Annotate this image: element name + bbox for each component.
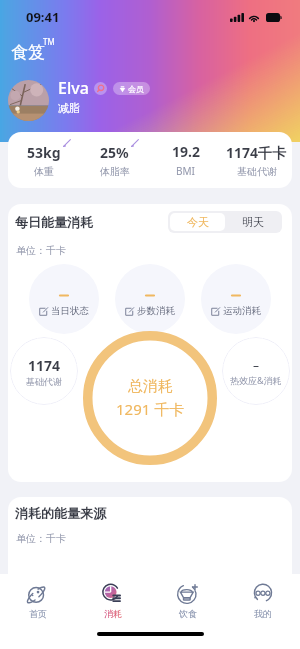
- staticText: 消耗: [104, 608, 122, 619]
- other: 首页: [26, 582, 49, 605]
- button[interactable]: 53kg: [8, 143, 79, 178]
- staticText: 1174: [28, 356, 61, 375]
- button[interactable]: 当日状态: [29, 264, 99, 334]
- staticText: Elva: [58, 77, 89, 99]
- button[interactable]: 消耗: [75, 582, 150, 619]
- staticText: 体脂率: [100, 165, 130, 178]
- staticText: 运动消耗: [223, 305, 261, 317]
- staticText: 1174千卡: [226, 143, 287, 162]
- button[interactable]: 明天: [225, 213, 280, 231]
- staticText: –: [253, 357, 260, 373]
- other: 饮食: [176, 582, 199, 605]
- staticText: 明天: [242, 215, 264, 229]
- staticText: TM: [43, 36, 55, 47]
- staticText: 食笈: [11, 42, 45, 63]
- staticText: 热效应&消耗: [230, 374, 282, 386]
- staticText: 基础代谢: [26, 376, 62, 387]
- button[interactable]: 我的: [225, 582, 300, 619]
- button[interactable]: 19.2: [150, 142, 221, 178]
- button[interactable]: –: [222, 337, 290, 405]
- button[interactable]: 1174千卡: [221, 143, 292, 178]
- staticText: 饮食: [179, 608, 197, 619]
- button[interactable]: 今天: [170, 213, 225, 231]
- button[interactable]: 步数消耗: [115, 264, 185, 334]
- staticText: 体重: [34, 165, 54, 178]
- button[interactable]: 首页: [0, 582, 75, 619]
- staticText: 09:41: [26, 8, 60, 26]
- button[interactable]: 运动消耗: [201, 264, 271, 334]
- staticText: 53kg: [27, 143, 61, 162]
- staticText: 首页: [29, 608, 47, 619]
- staticText: 当日状态: [51, 305, 89, 317]
- button[interactable]: Search: [94, 82, 107, 95]
- staticText: 步数消耗: [137, 305, 175, 317]
- other: 消耗: [101, 582, 124, 605]
- staticText: 减脂: [58, 101, 80, 115]
- staticText: 今天: [187, 215, 209, 229]
- staticText: 我的: [254, 608, 272, 619]
- button[interactable]: 饮食: [150, 582, 225, 619]
- staticText: BMI: [176, 164, 195, 178]
- button[interactable]: 25%: [79, 143, 150, 178]
- staticText: 19.2: [172, 142, 200, 161]
- staticText: 1291 千卡: [116, 399, 185, 419]
- button[interactable]: 1174: [10, 337, 78, 405]
- staticText: 单位：千卡: [16, 244, 66, 257]
- button[interactable]: 会员: [113, 82, 150, 95]
- other: 我的: [251, 582, 274, 605]
- staticText: 基础代谢: [237, 165, 277, 178]
- staticText: 消耗的能量来源: [15, 505, 106, 521]
- staticText: 总消耗: [128, 377, 173, 396]
- staticText: 单位：千卡: [16, 532, 66, 545]
- staticText: 25%: [100, 143, 129, 162]
- staticText: 会员: [128, 84, 144, 94]
- staticText: 每日能量消耗: [15, 214, 93, 230]
